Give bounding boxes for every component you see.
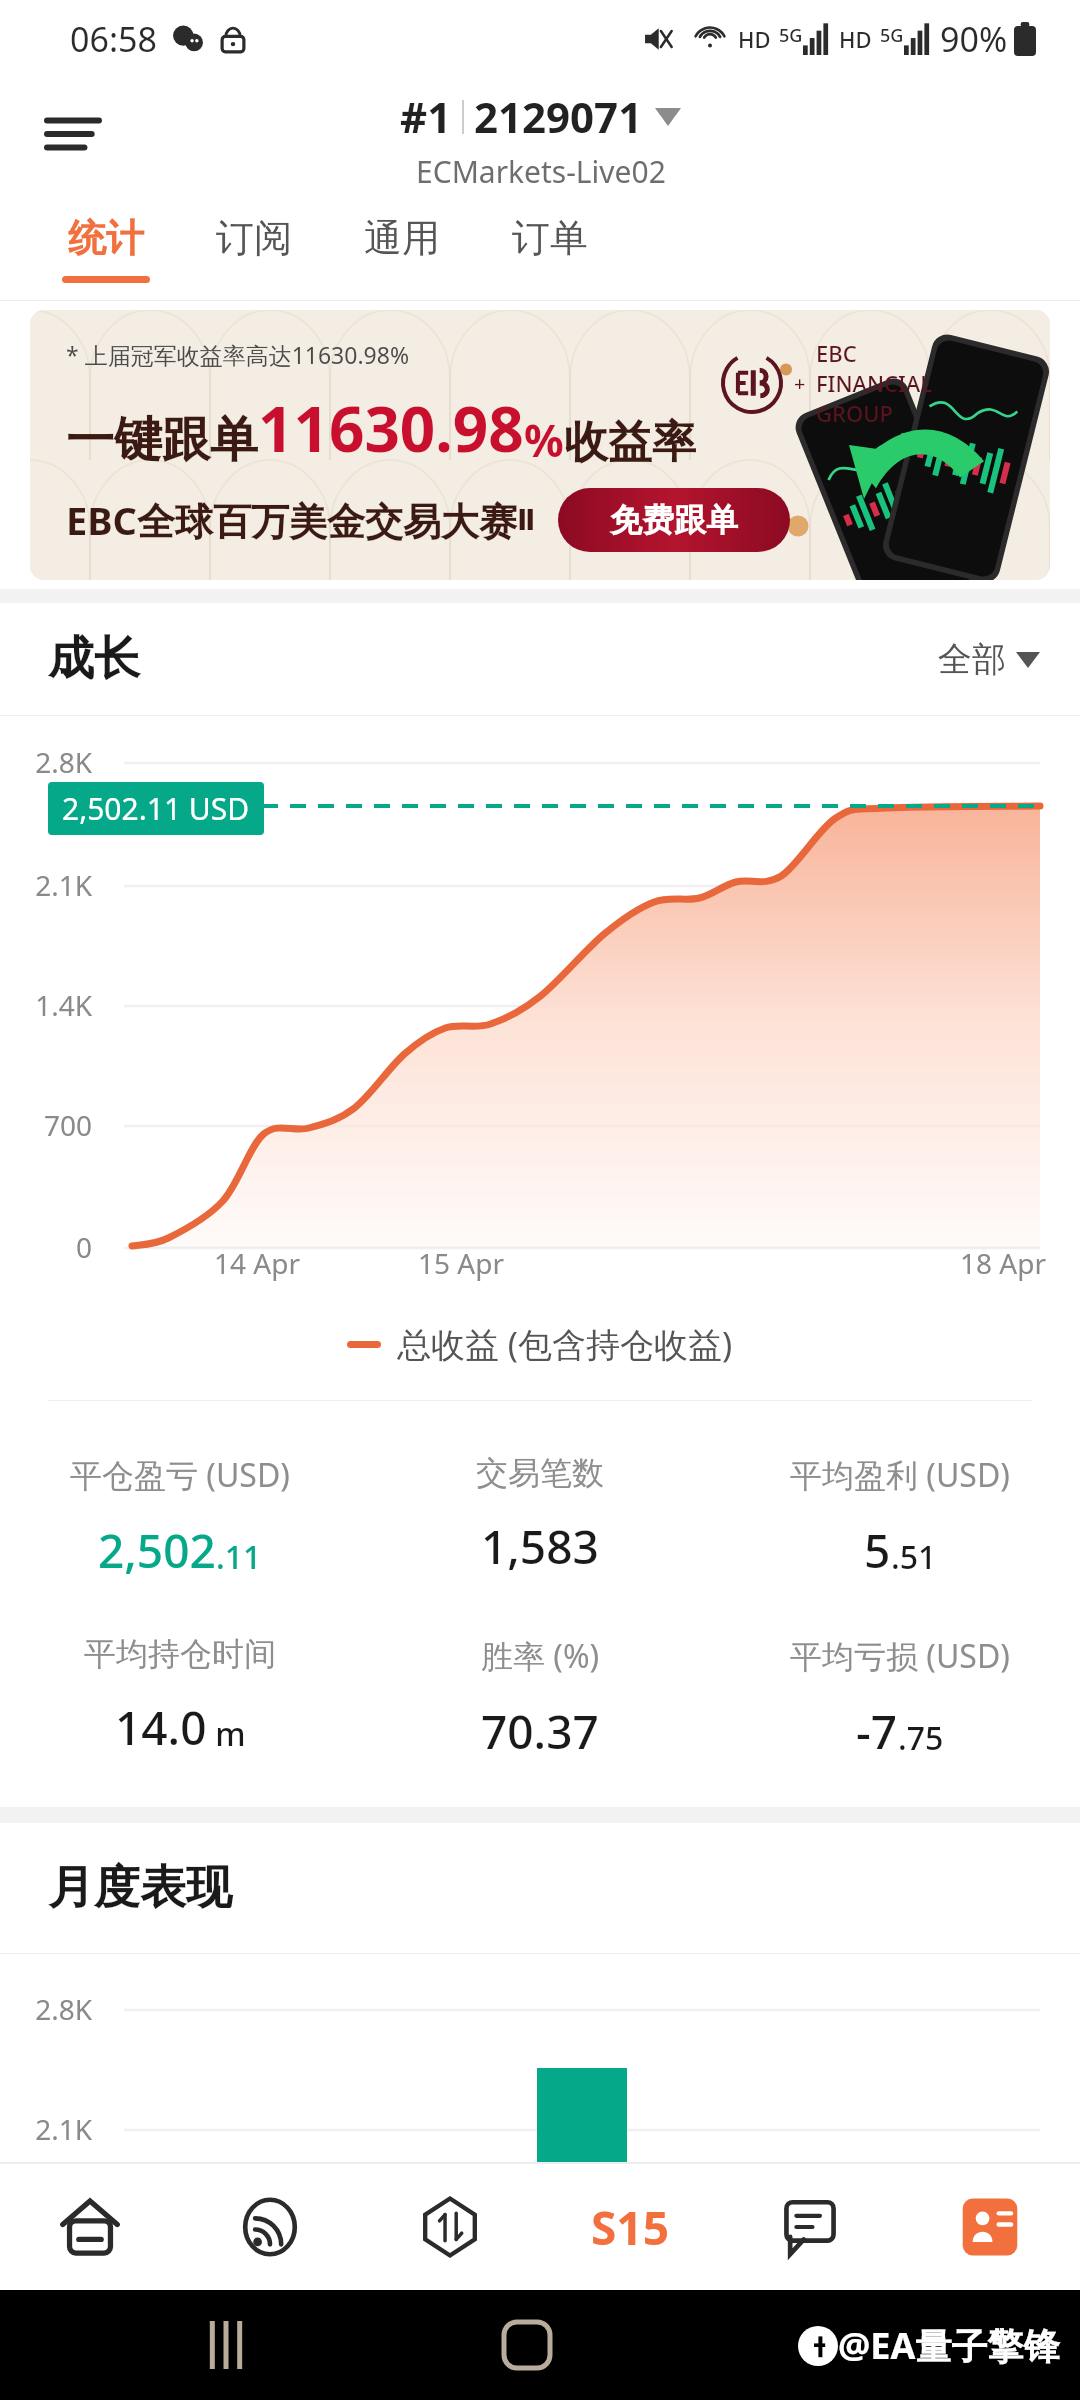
staticText: 通用 (364, 214, 440, 262)
staticText: Ⅱ (517, 504, 536, 537)
staticText: 订阅 (216, 214, 292, 262)
staticText: .75 (898, 1716, 944, 1760)
staticText: 5G (880, 23, 904, 48)
staticText: 一键跟单 (66, 410, 258, 470)
staticText: 2129071 (474, 88, 643, 145)
staticText: EBC (816, 338, 857, 368)
button[interactable]: S15 (540, 2164, 720, 2290)
button[interactable]: Account (900, 2164, 1080, 2290)
staticText: HD (839, 24, 872, 54)
staticText: 平均持仓时间 (84, 1634, 276, 1674)
button[interactable]: 统计 (32, 200, 180, 296)
staticText: 90% (940, 16, 1008, 62)
staticText: 14.0 (115, 1696, 207, 1759)
staticText: -7 (856, 1700, 898, 1763)
staticText: % (524, 410, 564, 470)
staticText: 订单 (512, 214, 588, 262)
button[interactable]: 通用 (328, 200, 476, 296)
staticText: 5G (779, 23, 803, 48)
staticText: EBC全球百万美金交易大赛 (66, 494, 517, 546)
staticText: m (207, 1712, 246, 1756)
staticText: 1,583 (481, 1515, 599, 1578)
staticText: 月度表现 (48, 1859, 232, 1917)
staticText: 2.8K (0, 743, 92, 781)
staticText: FINANCIAL (816, 368, 932, 398)
button[interactable]: Recents (196, 2315, 256, 2375)
staticText: 平仓盈亏 (USD) (70, 1453, 290, 1497)
staticText: 18 Apr (960, 1244, 1046, 1282)
staticText: 700 (0, 1106, 92, 1144)
staticText: HD (738, 24, 771, 54)
staticText: GROUP (816, 398, 893, 428)
staticText: 胜率 (%) (481, 1634, 600, 1678)
staticText: ECMarkets-Live02 (416, 151, 666, 192)
staticText: 总收益 (包含持仓收益) (397, 1321, 733, 1367)
button[interactable]: 全部 (938, 638, 1040, 681)
button[interactable]: Home (492, 2310, 562, 2380)
staticText: 2.8K (0, 1990, 92, 2028)
staticText: @EA量子擎锋 (838, 2321, 1060, 2370)
button[interactable]: Signals (180, 2164, 360, 2290)
staticText: #1 (400, 88, 452, 145)
staticText: 2.1K (0, 866, 92, 904)
staticText: 全部 (938, 638, 1006, 681)
button[interactable]: Home (0, 2164, 180, 2290)
button[interactable]: Trade (360, 2164, 540, 2290)
staticText: 成长 (48, 630, 140, 688)
button[interactable]: + (30, 310, 1050, 580)
staticText: 15 Apr (418, 1244, 504, 1282)
button[interactable]: Messages (720, 2164, 900, 2290)
button[interactable]: 免费跟单 (558, 488, 790, 552)
staticText: 2,502.11 USD (62, 788, 250, 829)
staticText: 交易笔数 (476, 1453, 604, 1493)
staticText: S15 (591, 2196, 669, 2259)
staticText: 2,502 (98, 1519, 216, 1582)
staticText: 0 (0, 1228, 92, 1266)
button[interactable]: 订单 (476, 200, 624, 296)
staticText: 5 (864, 1519, 891, 1582)
button[interactable]: Menu (30, 91, 116, 177)
staticText: 平均盈利 (USD) (790, 1453, 1010, 1497)
staticText: 统计 (68, 214, 144, 262)
staticText: * 上届冠军收益率高达11630.98% (66, 339, 410, 370)
staticText: .51 (891, 1535, 937, 1579)
staticText: 70.37 (481, 1700, 599, 1763)
staticText: 11630.98 (258, 386, 524, 470)
button[interactable]: 订阅 (180, 200, 328, 296)
staticText: 平均亏损 (USD) (790, 1634, 1010, 1678)
staticText: 14 Apr (214, 1244, 300, 1282)
staticText: + (794, 370, 806, 397)
staticText: 06:58 (70, 16, 157, 62)
staticText: .11 (216, 1535, 262, 1579)
staticText: 2.1K (0, 2110, 92, 2148)
staticText: 免费跟单 (610, 500, 738, 540)
staticText: 1.4K (0, 986, 92, 1024)
staticText: 收益率 (564, 415, 696, 470)
